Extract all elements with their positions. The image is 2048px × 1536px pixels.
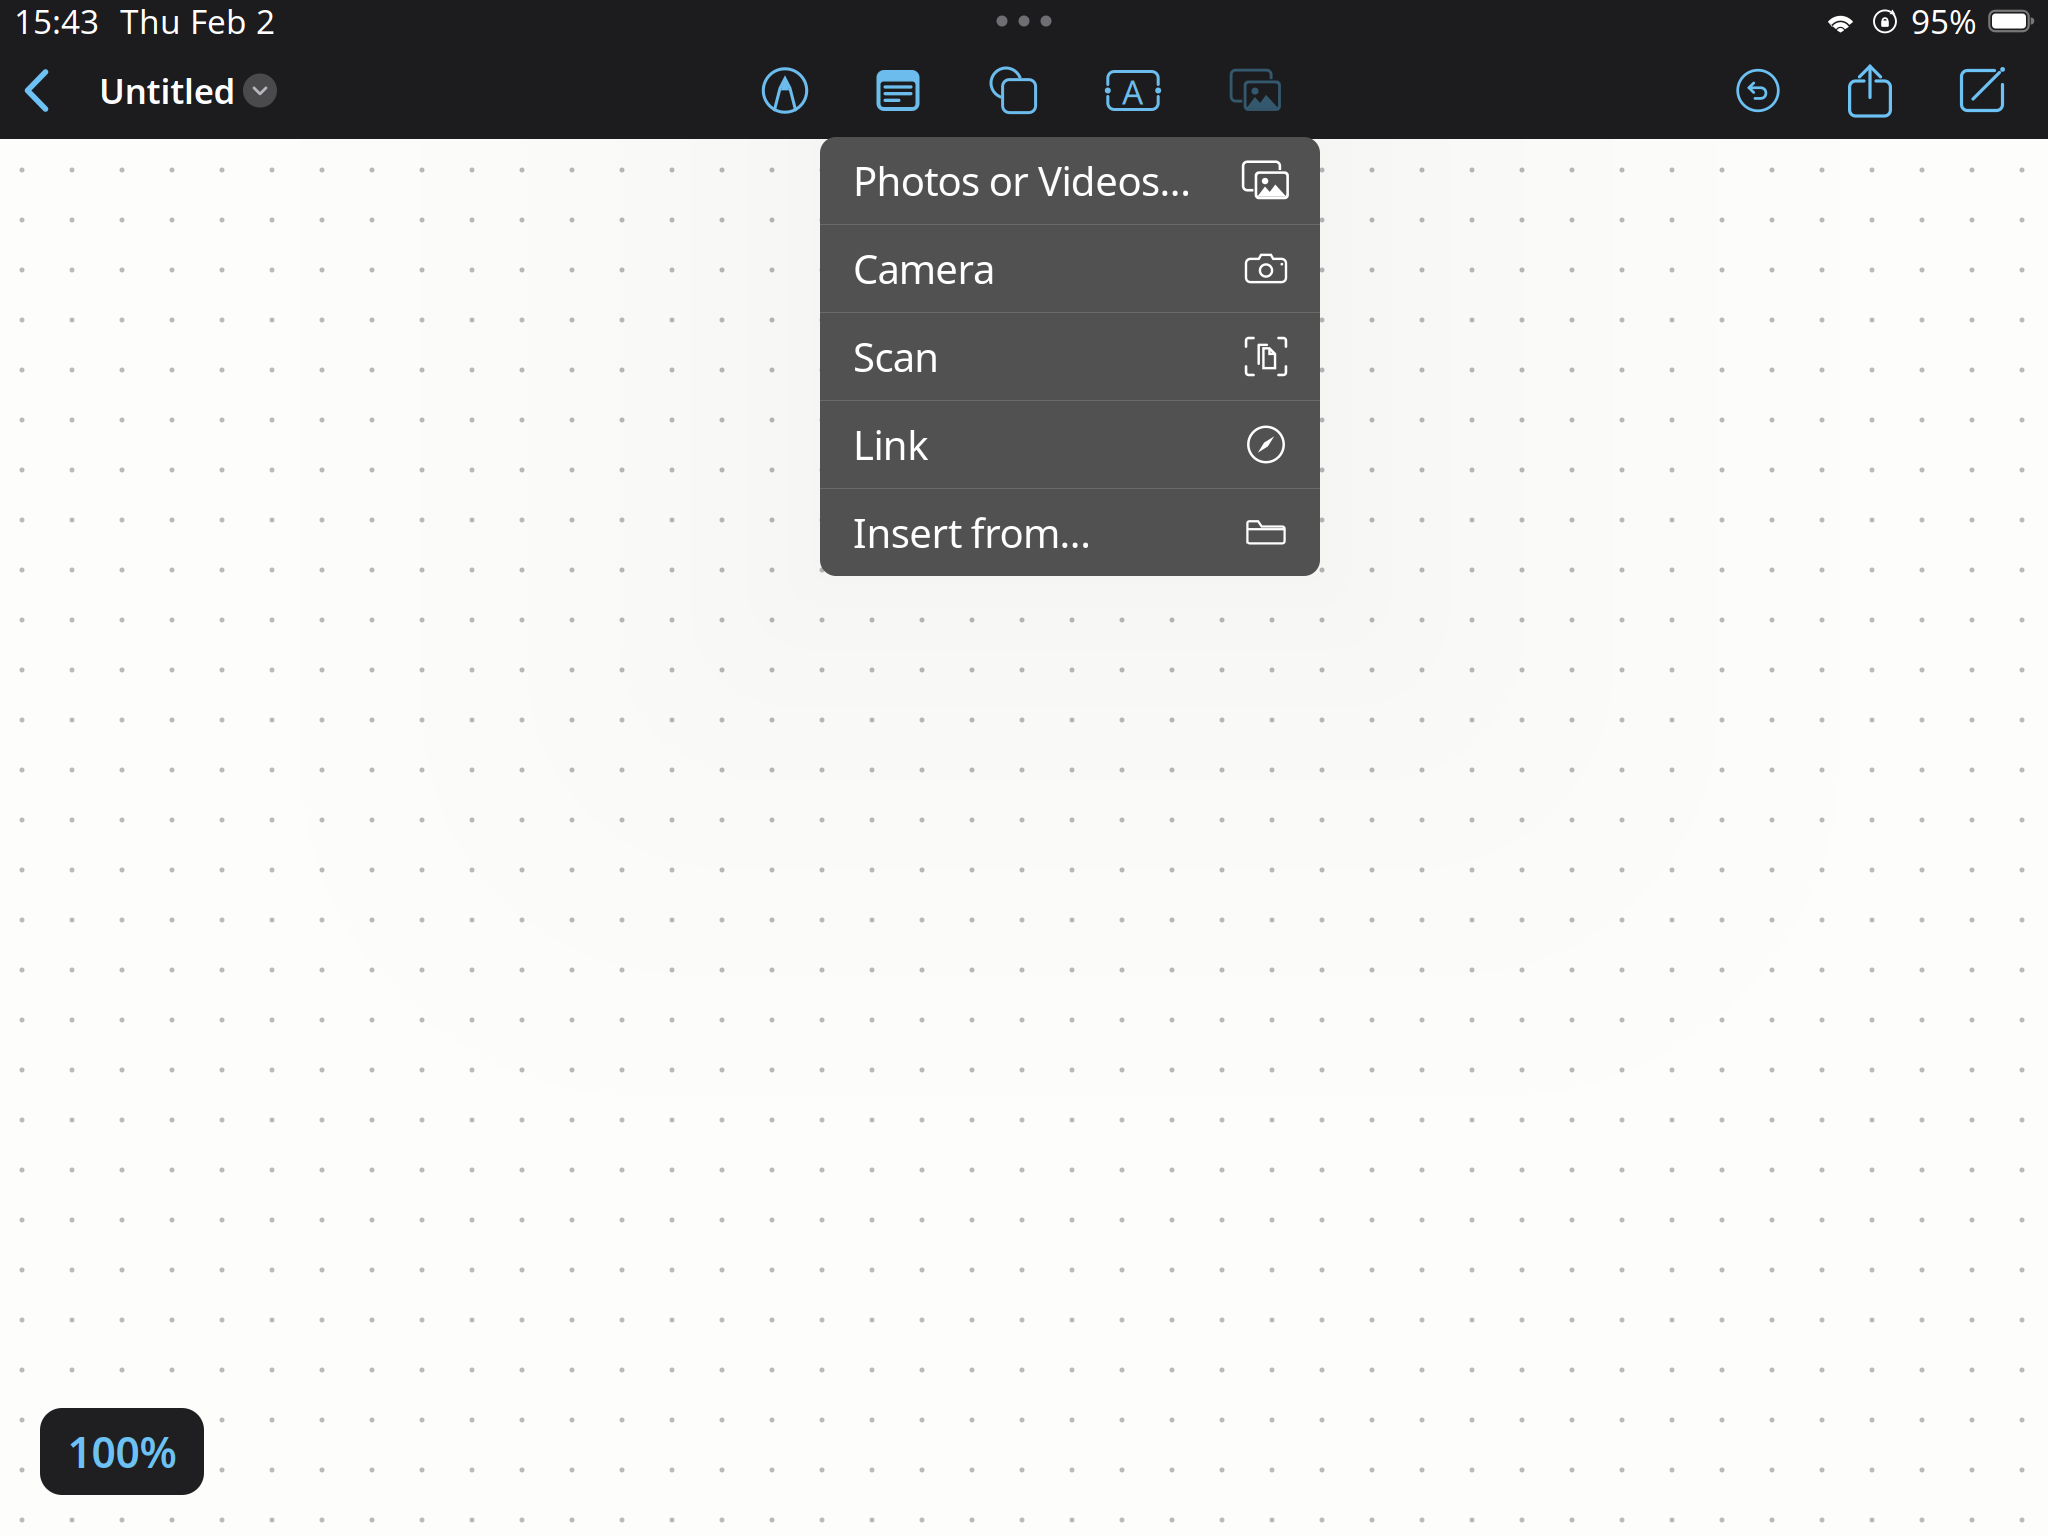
staticText: Photos or Videos... — [853, 154, 1191, 207]
button[interactable]: New note — [1940, 42, 2024, 139]
staticText: Thu Feb 2 — [120, 0, 275, 43]
button[interactable]: Insert media — [1194, 42, 1318, 139]
button[interactable]: Share — [1828, 42, 1912, 139]
staticText: 15:43 — [14, 0, 99, 43]
button[interactable]: Camera — [820, 225, 1320, 312]
staticText: 100% — [67, 1423, 176, 1480]
staticText: Camera — [853, 242, 995, 295]
button[interactable]: Insert from... — [820, 489, 1320, 576]
button[interactable]: Add sticky note — [841, 42, 955, 139]
button[interactable]: Undo — [1716, 42, 1800, 139]
button[interactable]: Add shape — [955, 42, 1072, 139]
staticText: Link — [853, 418, 928, 471]
staticText: Insert from... — [853, 506, 1091, 559]
staticText: 95% — [1911, 0, 1977, 43]
button[interactable]: Document options — [240, 42, 280, 139]
button[interactable]: Add text box — [1072, 42, 1194, 139]
button[interactable]: 100% — [40, 1408, 204, 1495]
button[interactable]: Photos or Videos... — [820, 137, 1320, 224]
staticText: Scan — [853, 330, 939, 383]
button[interactable]: Scan — [820, 313, 1320, 400]
button[interactable]: Draw — [729, 42, 841, 139]
button[interactable]: Link — [820, 401, 1320, 488]
staticText: Untitled — [99, 67, 236, 113]
button[interactable]: Back — [10, 42, 66, 139]
staticText: A — [1122, 69, 1143, 114]
